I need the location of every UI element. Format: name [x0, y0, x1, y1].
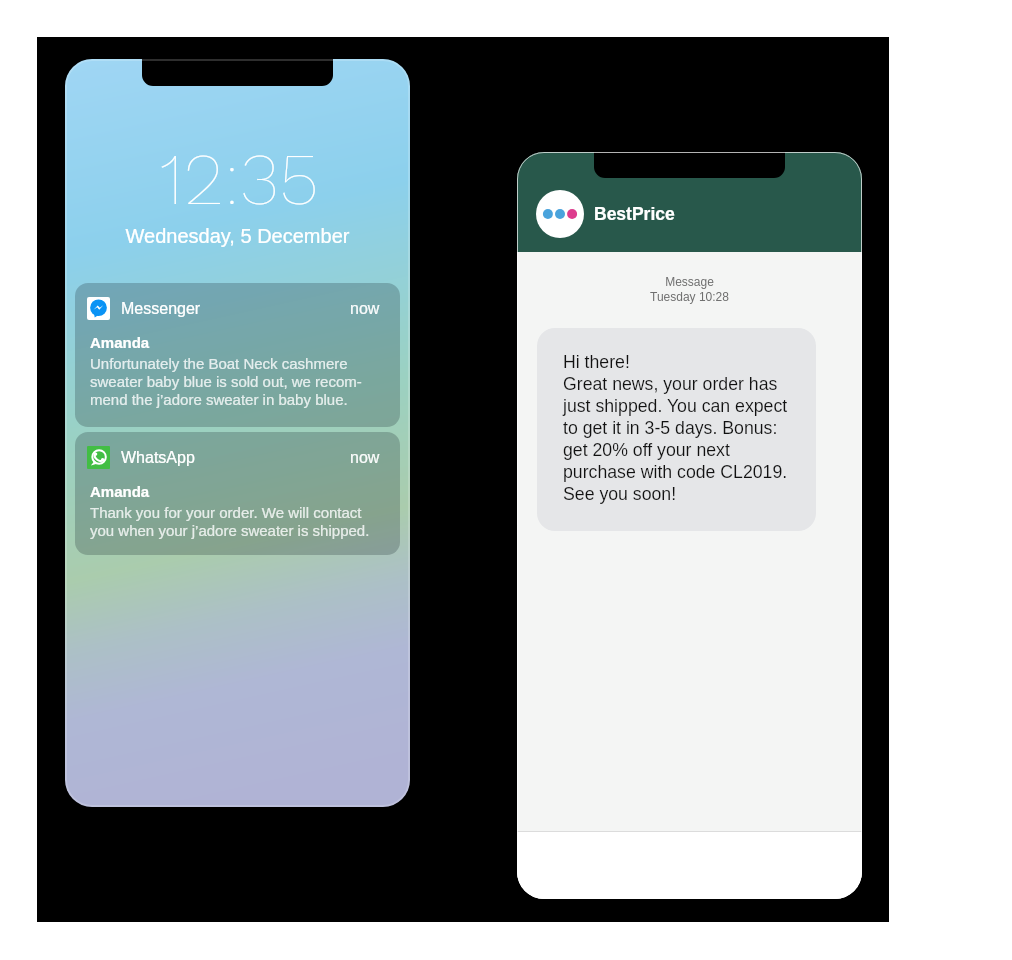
staticText: WhatsApp: [121, 449, 195, 467]
other: Messenger: [87, 297, 110, 320]
other: BestPrice logo: [536, 190, 584, 238]
staticText: Wednesday, 5 December: [65, 225, 410, 247]
staticText: BestPrice: [594, 204, 675, 224]
staticText: Amanda: [90, 483, 150, 500]
staticText: now: [350, 449, 380, 467]
other: WhatsApp: [87, 446, 110, 469]
button[interactable]: WhatsApp: [75, 432, 400, 555]
button[interactable]: Messenger: [75, 283, 400, 427]
staticText: Messenger: [121, 300, 201, 318]
button[interactable]: BestPrice logo: [536, 190, 675, 238]
staticText: Message Tuesday 10:28: [517, 275, 862, 303]
staticText: Unfortunately the Boat Neck cashmere swe…: [90, 355, 362, 408]
staticText: Amanda: [90, 334, 150, 351]
staticText: now: [350, 300, 380, 318]
staticText: Thank you for your order. We will contac…: [90, 504, 370, 539]
staticText: 12:35: [70, 137, 410, 221]
staticText: Hi there! Great news, your order has jus…: [563, 352, 788, 504]
button[interactable]: Hi there! Great news, your order has jus…: [537, 328, 816, 531]
